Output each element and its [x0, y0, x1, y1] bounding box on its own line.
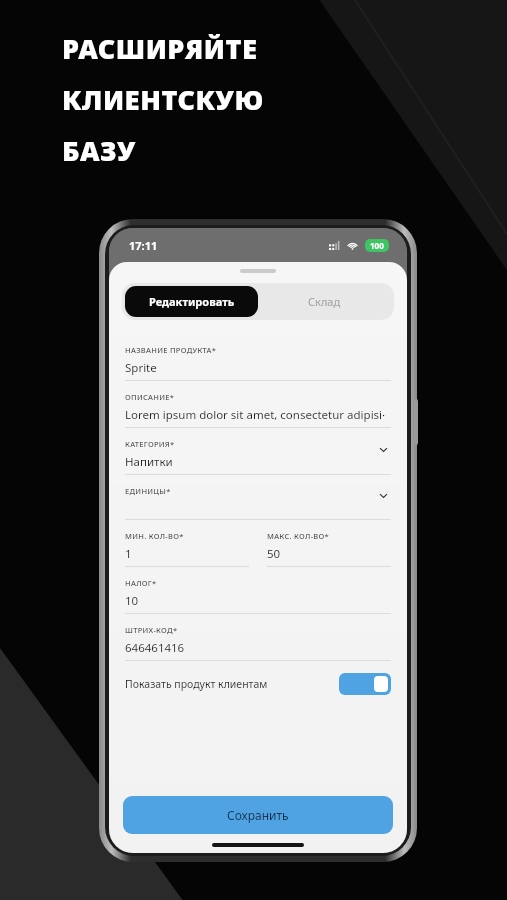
staticText: 646461416 — [125, 640, 185, 656]
staticText: 100 — [370, 240, 384, 251]
button[interactable]: ЕДИНИЦЫ* — [109, 475, 407, 520]
staticText: РАСШИРЯЙТЕ — [62, 30, 258, 67]
staticText: Показать продукт клиентам — [125, 677, 268, 691]
button[interactable]: Сохранить — [123, 796, 393, 834]
staticText: 10 — [125, 593, 139, 609]
staticText: 17:11 — [129, 238, 158, 253]
button[interactable]: НАЛОГ* — [109, 567, 407, 614]
button[interactable]: Склад — [258, 286, 391, 317]
staticText: ШТРИХ-КОД* — [125, 625, 178, 635]
staticText: НАЛОГ* — [125, 578, 157, 588]
staticText: Склад — [308, 294, 341, 309]
staticText: 50 — [267, 546, 281, 562]
button[interactable]: ОПИСАНИЕ* — [109, 381, 407, 428]
staticText: КАТЕГОРИЯ* — [125, 439, 175, 449]
staticText: Редактировать — [149, 294, 235, 309]
staticText: КЛИЕНТСКУЮ — [62, 81, 264, 118]
staticText: Сохранить — [227, 807, 289, 823]
button[interactable]: Редактировать — [125, 286, 258, 317]
staticText: Напитки — [125, 454, 173, 470]
staticText: ЕДИНИЦЫ* — [125, 486, 171, 496]
button[interactable]: НАЗВАНИЕ ПРОДУКТА* — [109, 334, 407, 381]
button[interactable]: Показать продукт клиентам — [125, 673, 391, 695]
staticText: Sprite — [125, 360, 157, 376]
staticText: НАЗВАНИЕ ПРОДУКТА* — [125, 345, 217, 355]
staticText: МАКС. КОЛ-ВО* — [267, 531, 330, 541]
staticText: БАЗУ — [62, 132, 137, 169]
staticText: Lorem ipsum dolor sit amet, consectetur … — [125, 407, 386, 423]
button[interactable]: ШТРИХ-КОД* — [109, 614, 407, 661]
button[interactable]: КАТЕГОРИЯ* — [109, 428, 407, 475]
staticText: 1 — [125, 546, 132, 562]
staticText: МИН. КОЛ-ВО* — [125, 531, 184, 541]
staticText: ОПИСАНИЕ* — [125, 392, 175, 402]
